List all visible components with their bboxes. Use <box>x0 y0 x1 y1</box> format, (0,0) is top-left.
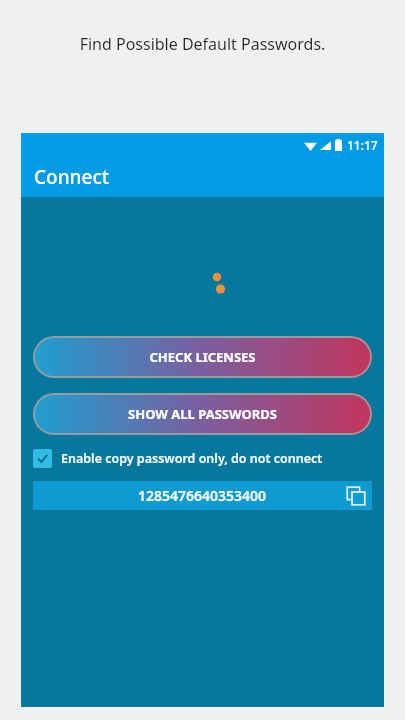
button[interactable]: 1285476640353400 <box>33 481 372 510</box>
button[interactable]: Copy password <box>343 483 368 508</box>
staticText: Enable copy password only, do not connec… <box>61 450 323 467</box>
staticText: SHOW ALL PASSWORDS <box>128 405 277 423</box>
staticText: 1285476640353400 <box>138 486 267 505</box>
button[interactable]: Enable copy password only, do not connec… <box>33 447 323 470</box>
staticText: Connect <box>34 164 110 190</box>
staticText: Find Possible Default Passwords. <box>0 33 405 55</box>
button[interactable]: CHECK LICENSES <box>33 336 372 378</box>
staticText: CHECK LICENSES <box>149 348 256 366</box>
button[interactable]: SHOW ALL PASSWORDS <box>33 393 372 435</box>
staticText: 11:17 <box>347 137 378 153</box>
